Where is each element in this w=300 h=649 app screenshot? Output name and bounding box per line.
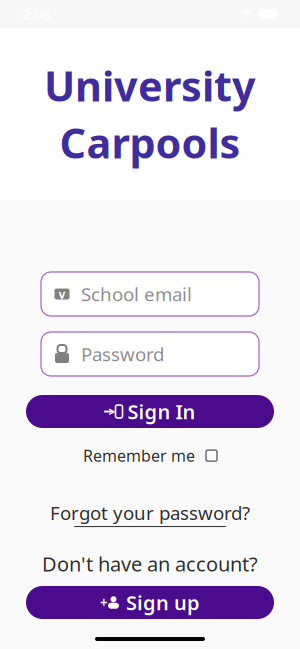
- button[interactable]: Remember me: [77, 441, 223, 470]
- staticText: Carpools: [59, 115, 240, 170]
- button[interactable]: +: [26, 586, 274, 619]
- staticText: v: [58, 286, 65, 302]
- staticText: +: [100, 594, 108, 611]
- staticText: >: [108, 403, 115, 419]
- staticText: School email: [81, 282, 192, 306]
- staticText: University: [44, 58, 256, 113]
- staticText: Sign up: [126, 589, 200, 616]
- staticText: Don't have an account?: [42, 550, 258, 577]
- staticText: Sign In: [127, 398, 195, 425]
- button[interactable]: Forgot your password?: [50, 497, 250, 530]
- staticText: Password: [81, 342, 164, 366]
- staticText: Remember me: [83, 445, 195, 466]
- button[interactable]: >: [26, 395, 274, 428]
- staticText: Forgot your password?: [50, 500, 250, 525]
